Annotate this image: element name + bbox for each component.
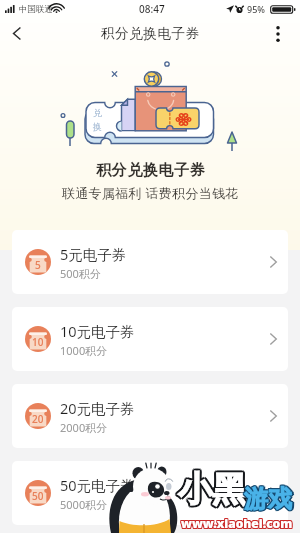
- staticText: 小黑: [180, 469, 248, 512]
- staticText: 游戏: [244, 484, 292, 514]
- staticText: 小黑: [177, 470, 245, 513]
- staticText: 小黑: [179, 470, 247, 513]
- staticText: 游戏: [243, 483, 291, 513]
- staticText: 中国联通: [19, 4, 53, 15]
- staticText: 游戏: [245, 485, 293, 515]
- staticText: 小黑: [176, 468, 244, 511]
- staticText: 游戏: [246, 484, 294, 514]
- staticText: www.xiaohei.com: [182, 514, 294, 530]
- staticText: 95%: [247, 3, 265, 15]
- staticText: 游戏: [245, 483, 293, 513]
- staticText: 游戏: [244, 485, 292, 515]
- staticText: 小黑: [178, 468, 246, 511]
- staticText: 游戏: [244, 483, 292, 513]
- staticText: www.xiaohei.com: [182, 516, 294, 532]
- staticText: www.xiaohei.com: [181, 514, 293, 530]
- staticText: 5元电子券: [60, 244, 127, 264]
- button[interactable]: 20: [12, 384, 288, 448]
- staticText: 小黑: [177, 466, 245, 509]
- staticText: www.xiaohei.com: [182, 515, 294, 531]
- staticText: 5: [35, 258, 41, 272]
- staticText: www.xiaohei.com: [181, 516, 293, 532]
- button[interactable]: More options: [264, 20, 292, 48]
- staticText: 08:47: [139, 2, 165, 16]
- staticText: 小黑: [180, 468, 248, 511]
- staticText: 50: [32, 489, 44, 503]
- staticText: www.xiaohei.com: [180, 515, 292, 531]
- staticText: 联通专属福利 话费积分当钱花: [62, 184, 239, 202]
- staticText: 兑: [93, 107, 102, 118]
- staticText: 500积分: [60, 266, 101, 281]
- staticText: 20元电子券: [60, 398, 135, 418]
- button[interactable]: 5: [12, 230, 288, 294]
- staticText: www.xiaohei.com: [180, 516, 292, 532]
- staticText: 50元电子券: [60, 475, 135, 495]
- staticText: 换: [93, 121, 102, 132]
- staticText: 小黑: [176, 467, 244, 510]
- staticText: www.xiaohei.com: [181, 515, 293, 531]
- button[interactable]: Back: [3, 19, 31, 47]
- staticText: 游戏: [244, 483, 292, 513]
- staticText: 游戏: [243, 484, 291, 514]
- staticText: www.xiaohei.com: [181, 514, 293, 530]
- staticText: 积分兑换电子券: [96, 161, 206, 180]
- staticText: 10: [32, 335, 44, 349]
- button[interactable]: 50: [12, 461, 288, 525]
- button[interactable]: 10: [12, 307, 288, 371]
- staticText: 1000积分: [60, 343, 108, 358]
- staticText: 积分兑换电子券: [101, 25, 200, 42]
- staticText: 游戏: [243, 485, 291, 515]
- staticText: 小黑: [180, 467, 248, 510]
- staticText: www.xiaohei.com: [180, 514, 292, 530]
- staticText: 小黑: [179, 466, 247, 509]
- staticText: www.xiaohei.com: [181, 516, 293, 532]
- staticText: 2000积分: [60, 420, 108, 435]
- staticText: 游戏: [244, 485, 292, 515]
- staticText: 20: [32, 412, 44, 426]
- staticText: 小黑: [176, 469, 244, 512]
- staticText: 10元电子券: [60, 321, 135, 341]
- staticText: 5000积分: [60, 497, 108, 512]
